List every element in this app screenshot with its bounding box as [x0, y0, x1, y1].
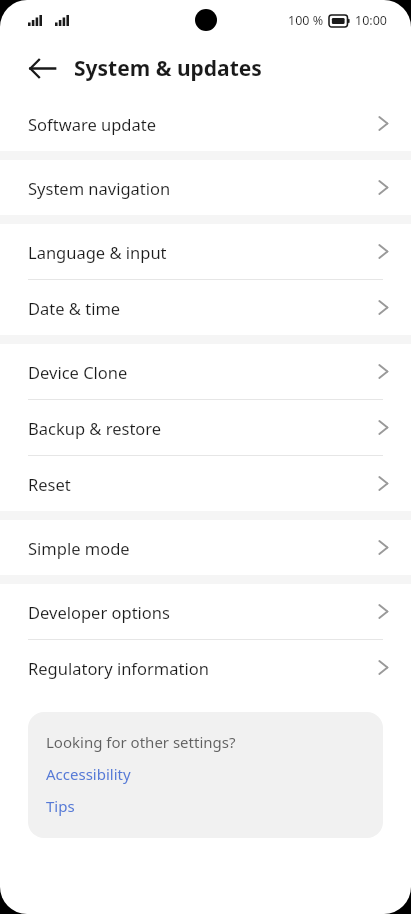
- button[interactable]: Tips: [46, 796, 75, 816]
- staticText: Developer options: [28, 601, 170, 623]
- staticText: Language & input: [28, 241, 167, 263]
- button[interactable]: Device Clone: [0, 344, 411, 399]
- staticText: 100 %: [288, 12, 324, 29]
- staticText: Software update: [28, 113, 156, 135]
- staticText: Date & time: [28, 297, 121, 319]
- staticText: System navigation: [28, 177, 171, 199]
- staticText: Backup & restore: [28, 417, 162, 439]
- staticText: Regulatory information: [28, 657, 209, 679]
- staticText: Device Clone: [28, 361, 128, 383]
- staticText: Tips: [46, 796, 75, 816]
- button[interactable]: Backup & restore: [0, 400, 411, 455]
- button[interactable]: Language & input: [0, 224, 411, 279]
- button[interactable]: Date & time: [0, 280, 411, 335]
- staticText: Looking for other settings?: [46, 732, 236, 752]
- button[interactable]: Simple mode: [0, 520, 411, 575]
- button[interactable]: Back: [20, 46, 64, 90]
- button[interactable]: Developer options: [0, 584, 411, 639]
- staticText: System & updates: [74, 54, 262, 83]
- button[interactable]: Accessibility: [46, 764, 131, 784]
- staticText: 10:00: [355, 12, 387, 29]
- staticText: Simple mode: [28, 537, 130, 559]
- staticText: Reset: [28, 473, 71, 495]
- button[interactable]: Reset: [0, 456, 411, 511]
- button[interactable]: System navigation: [0, 160, 411, 215]
- button[interactable]: Regulatory information: [0, 640, 411, 695]
- staticText: Accessibility: [46, 764, 131, 784]
- button[interactable]: Software update: [0, 96, 411, 151]
